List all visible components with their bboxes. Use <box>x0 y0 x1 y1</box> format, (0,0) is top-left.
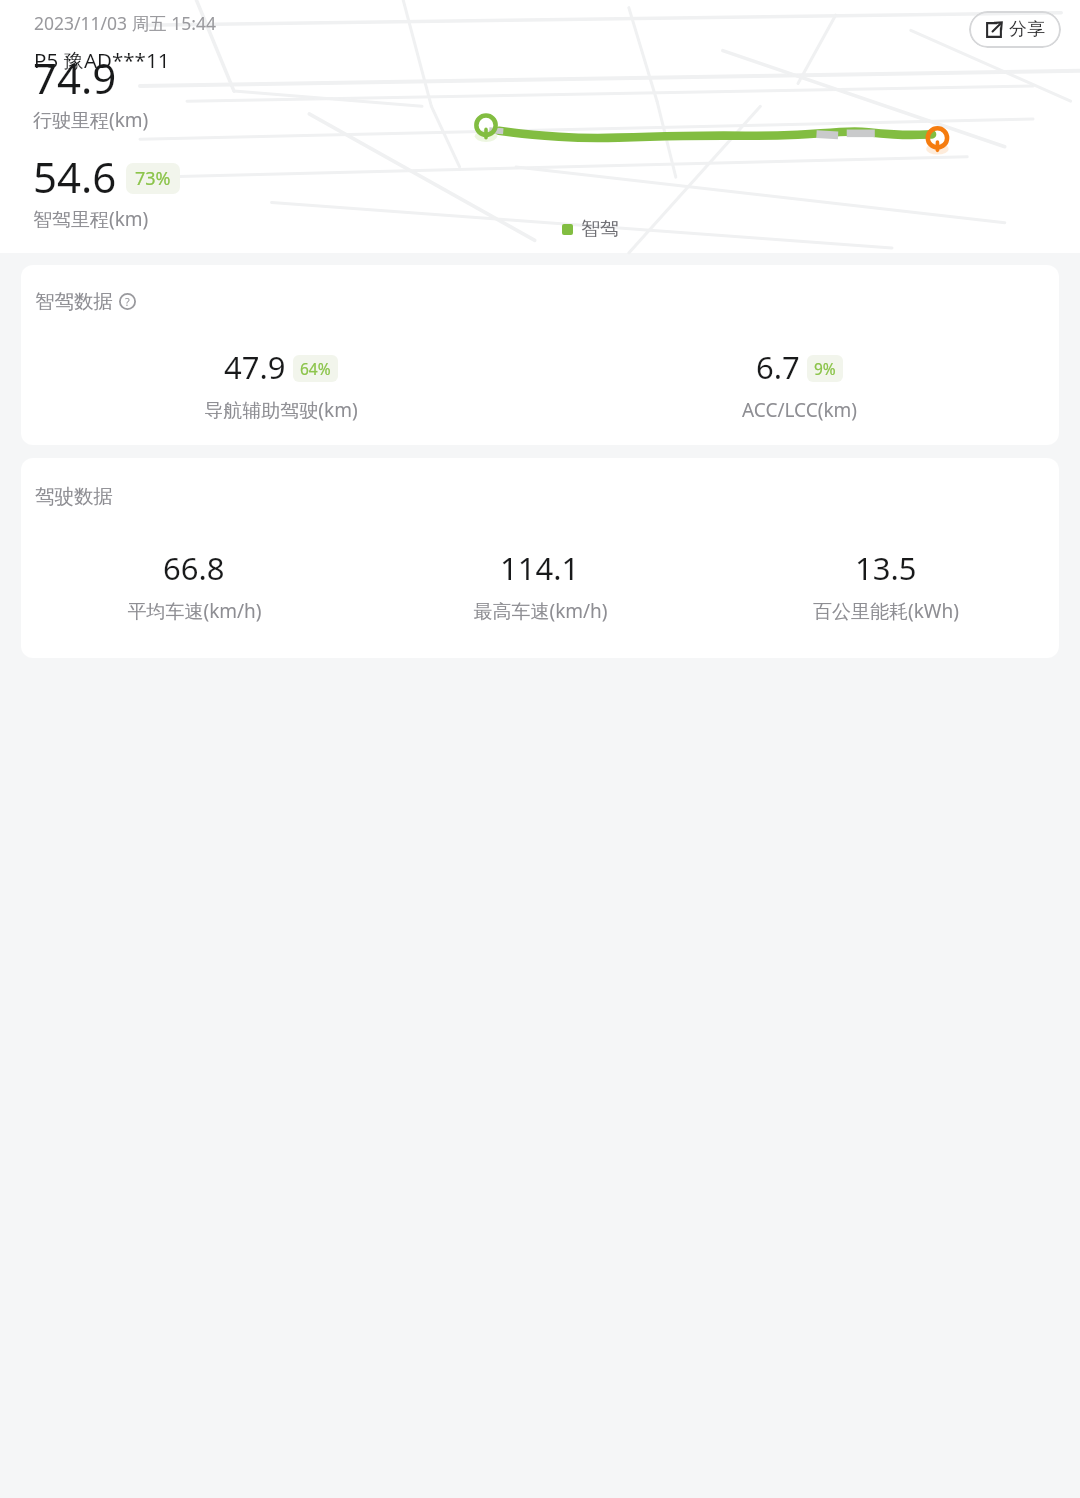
staticText: 智驾数据 <box>35 289 113 314</box>
staticText: 平均车速(km/h) <box>127 598 262 624</box>
staticText: 66.8 <box>163 547 225 589</box>
staticText: 47.9 <box>224 346 286 388</box>
staticText: 74.9 <box>33 49 117 106</box>
staticText: 驾驶数据 <box>35 484 113 509</box>
staticText: 分享 <box>1009 18 1045 41</box>
button[interactable]: 关于智驾数据 <box>119 293 136 310</box>
button[interactable]: 分享 <box>969 11 1061 48</box>
staticText: 智驾里程(km) <box>33 206 149 232</box>
staticText: P5 豫AD***11 <box>34 46 170 74</box>
staticText: 2023/11/03 周五 15:44 <box>34 11 216 35</box>
staticText: ? <box>125 294 130 309</box>
staticText: ACC/LCC(km) <box>742 397 857 423</box>
staticText: 9% <box>814 358 836 379</box>
staticText: 行驶里程(km) <box>33 107 149 133</box>
staticText: 百公里能耗(kWh) <box>813 598 959 624</box>
staticText: 13.5 <box>855 547 917 589</box>
staticText: 6.7 <box>756 346 800 388</box>
staticText: 64% <box>300 358 331 379</box>
staticText: 54.6 <box>33 148 117 205</box>
staticText: 最高车速(km/h) <box>473 598 608 624</box>
staticText: 73% <box>135 166 171 191</box>
staticText: 114.1 <box>500 547 580 589</box>
staticText: 导航辅助驾驶(km) <box>204 397 358 423</box>
staticText: 智驾 <box>581 217 619 241</box>
